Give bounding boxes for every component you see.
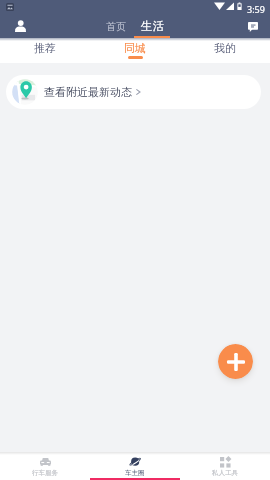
staticText: 3:59 xyxy=(247,3,265,15)
staticText: 车主圈 xyxy=(125,469,145,477)
button[interactable]: Messages xyxy=(236,15,270,38)
button[interactable]: Add xyxy=(218,344,253,379)
button[interactable]: 首页 xyxy=(101,17,131,36)
button[interactable]: 车主圈 xyxy=(90,452,180,480)
button[interactable]: Profile xyxy=(0,15,40,38)
staticText: 查看附近最新动态 xyxy=(44,85,132,99)
staticText: 推荐 xyxy=(34,41,56,55)
button[interactable]: 查看附近最新动态 xyxy=(6,75,261,109)
staticText: 我的 xyxy=(214,41,236,55)
button[interactable]: 我的 xyxy=(180,38,270,63)
button[interactable]: 行车服务 xyxy=(0,452,90,480)
staticText: 同城 xyxy=(124,41,146,55)
staticText: 首页 xyxy=(106,20,126,33)
staticText: 行车服务 xyxy=(32,469,58,477)
button[interactable]: 生活 xyxy=(136,16,169,36)
button[interactable]: 私人工具 xyxy=(180,452,270,480)
button[interactable]: 推荐 xyxy=(0,38,90,63)
staticText: 生活 xyxy=(141,19,164,33)
button[interactable]: 同城 xyxy=(90,38,180,63)
staticText: 私人工具 xyxy=(212,469,238,477)
